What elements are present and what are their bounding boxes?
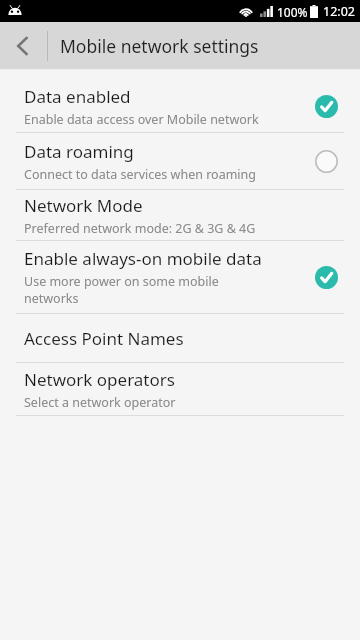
staticText: Select a network operator: [24, 394, 176, 411]
staticText: Connect to data services when roaming: [24, 166, 256, 183]
staticText: 100%: [277, 4, 308, 20]
staticText: Data roaming: [24, 140, 134, 163]
staticText: Network Mode: [24, 194, 143, 217]
button[interactable]: Data enabled: [0, 80, 360, 132]
staticText: Mobile network settings: [60, 34, 259, 58]
button[interactable]: Checked: [308, 259, 344, 295]
staticText: 12:02: [323, 3, 355, 20]
staticText: Preferred network mode: 2G & 3G & 4G: [24, 220, 256, 237]
staticText: Access Point Names: [24, 327, 184, 350]
staticText: Data enabled: [24, 85, 131, 108]
staticText: Network operators: [24, 368, 175, 391]
button[interactable]: Back: [0, 22, 46, 69]
button[interactable]: Unchecked: [308, 143, 344, 179]
button[interactable]: Enable always-on mobile data: [0, 241, 360, 313]
button[interactable]: Checked: [308, 88, 344, 124]
staticText: Use more power on some mobile networks: [24, 273, 234, 307]
staticText: Enable data access over Mobile network: [24, 111, 259, 128]
button[interactable]: Access Point Names: [0, 314, 360, 362]
button[interactable]: Data roaming: [0, 133, 360, 189]
staticText: Enable always-on mobile data: [24, 247, 262, 270]
button[interactable]: Network operators: [0, 363, 360, 415]
button[interactable]: Network Mode: [0, 190, 360, 240]
